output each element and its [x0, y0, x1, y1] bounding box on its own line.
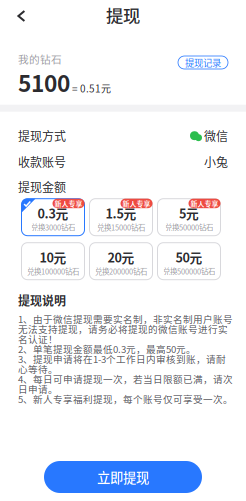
button[interactable]: 立即提现 [44, 461, 202, 493]
staticText: 1.5元 [105, 206, 136, 220]
staticText: 提现方式 [18, 129, 66, 142]
staticText: 新人专享 [190, 200, 218, 207]
staticText: 提现金额 [18, 180, 66, 193]
staticText: 兑换100000钻石 [27, 267, 79, 275]
button[interactable]: 50元 [157, 243, 220, 280]
staticText: 提现说明 [18, 294, 66, 307]
staticText: 新人专享 [122, 200, 150, 207]
button[interactable]: 20元 [89, 243, 152, 280]
staticText: 收款账号 [18, 155, 66, 168]
staticText: 3、提现申请将在1-3个工作日内审核到账，请耐 [18, 354, 226, 364]
staticText: 心等待。 [18, 364, 58, 374]
staticText: 兑换3000钻石 [31, 223, 75, 231]
button[interactable]: 10元 [21, 243, 84, 280]
staticText: 日申请。 [18, 384, 58, 394]
button[interactable]: 提现记录 [178, 56, 228, 69]
staticText: 新人专享 [54, 200, 82, 207]
staticText: 10元 [39, 250, 66, 264]
staticText: 2、单笔提现金额最低0.3元，最高50元。 [18, 344, 196, 354]
button[interactable]: 1.5元 [89, 199, 152, 236]
button[interactable]: 0.3元 [21, 199, 84, 236]
staticText: 兑换15000钻石 [97, 223, 145, 231]
staticText: 名认证！ [18, 334, 58, 344]
button[interactable]: 5元 [157, 199, 220, 236]
staticText: 提现记录 [185, 57, 221, 68]
staticText: 小兔 [204, 155, 228, 168]
staticText: 5元 [179, 206, 199, 220]
staticText: 微信 [204, 129, 228, 142]
staticText: 兑换500000钻石 [163, 267, 215, 275]
staticText: 我的钻石 [18, 53, 62, 65]
staticText: 0.3元 [37, 206, 68, 220]
staticText: 立即提现 [97, 470, 149, 484]
staticText: 无法支持提现，请务必将提现的微信账号进行实 [18, 324, 228, 334]
staticText: 20元 [107, 250, 134, 264]
staticText: 5100 [18, 70, 70, 95]
staticText: 兑换200000钻石 [95, 267, 147, 275]
staticText: = 0.51元 [72, 83, 111, 94]
staticText: 4、每日可申请提现一次，若当日限额已满，请次 [18, 374, 233, 384]
staticText: 提现 [106, 5, 140, 25]
staticText: 5、新人专享福利提现，每个账号仅可享受一次。 [18, 394, 233, 404]
staticText: 1、由于微信提现需要实名制，非实名制用户账号 [18, 314, 233, 324]
button[interactable]: 返回 [8, 0, 38, 30]
staticText: 兑换50000钻石 [165, 223, 213, 231]
staticText: 50元 [175, 250, 202, 264]
